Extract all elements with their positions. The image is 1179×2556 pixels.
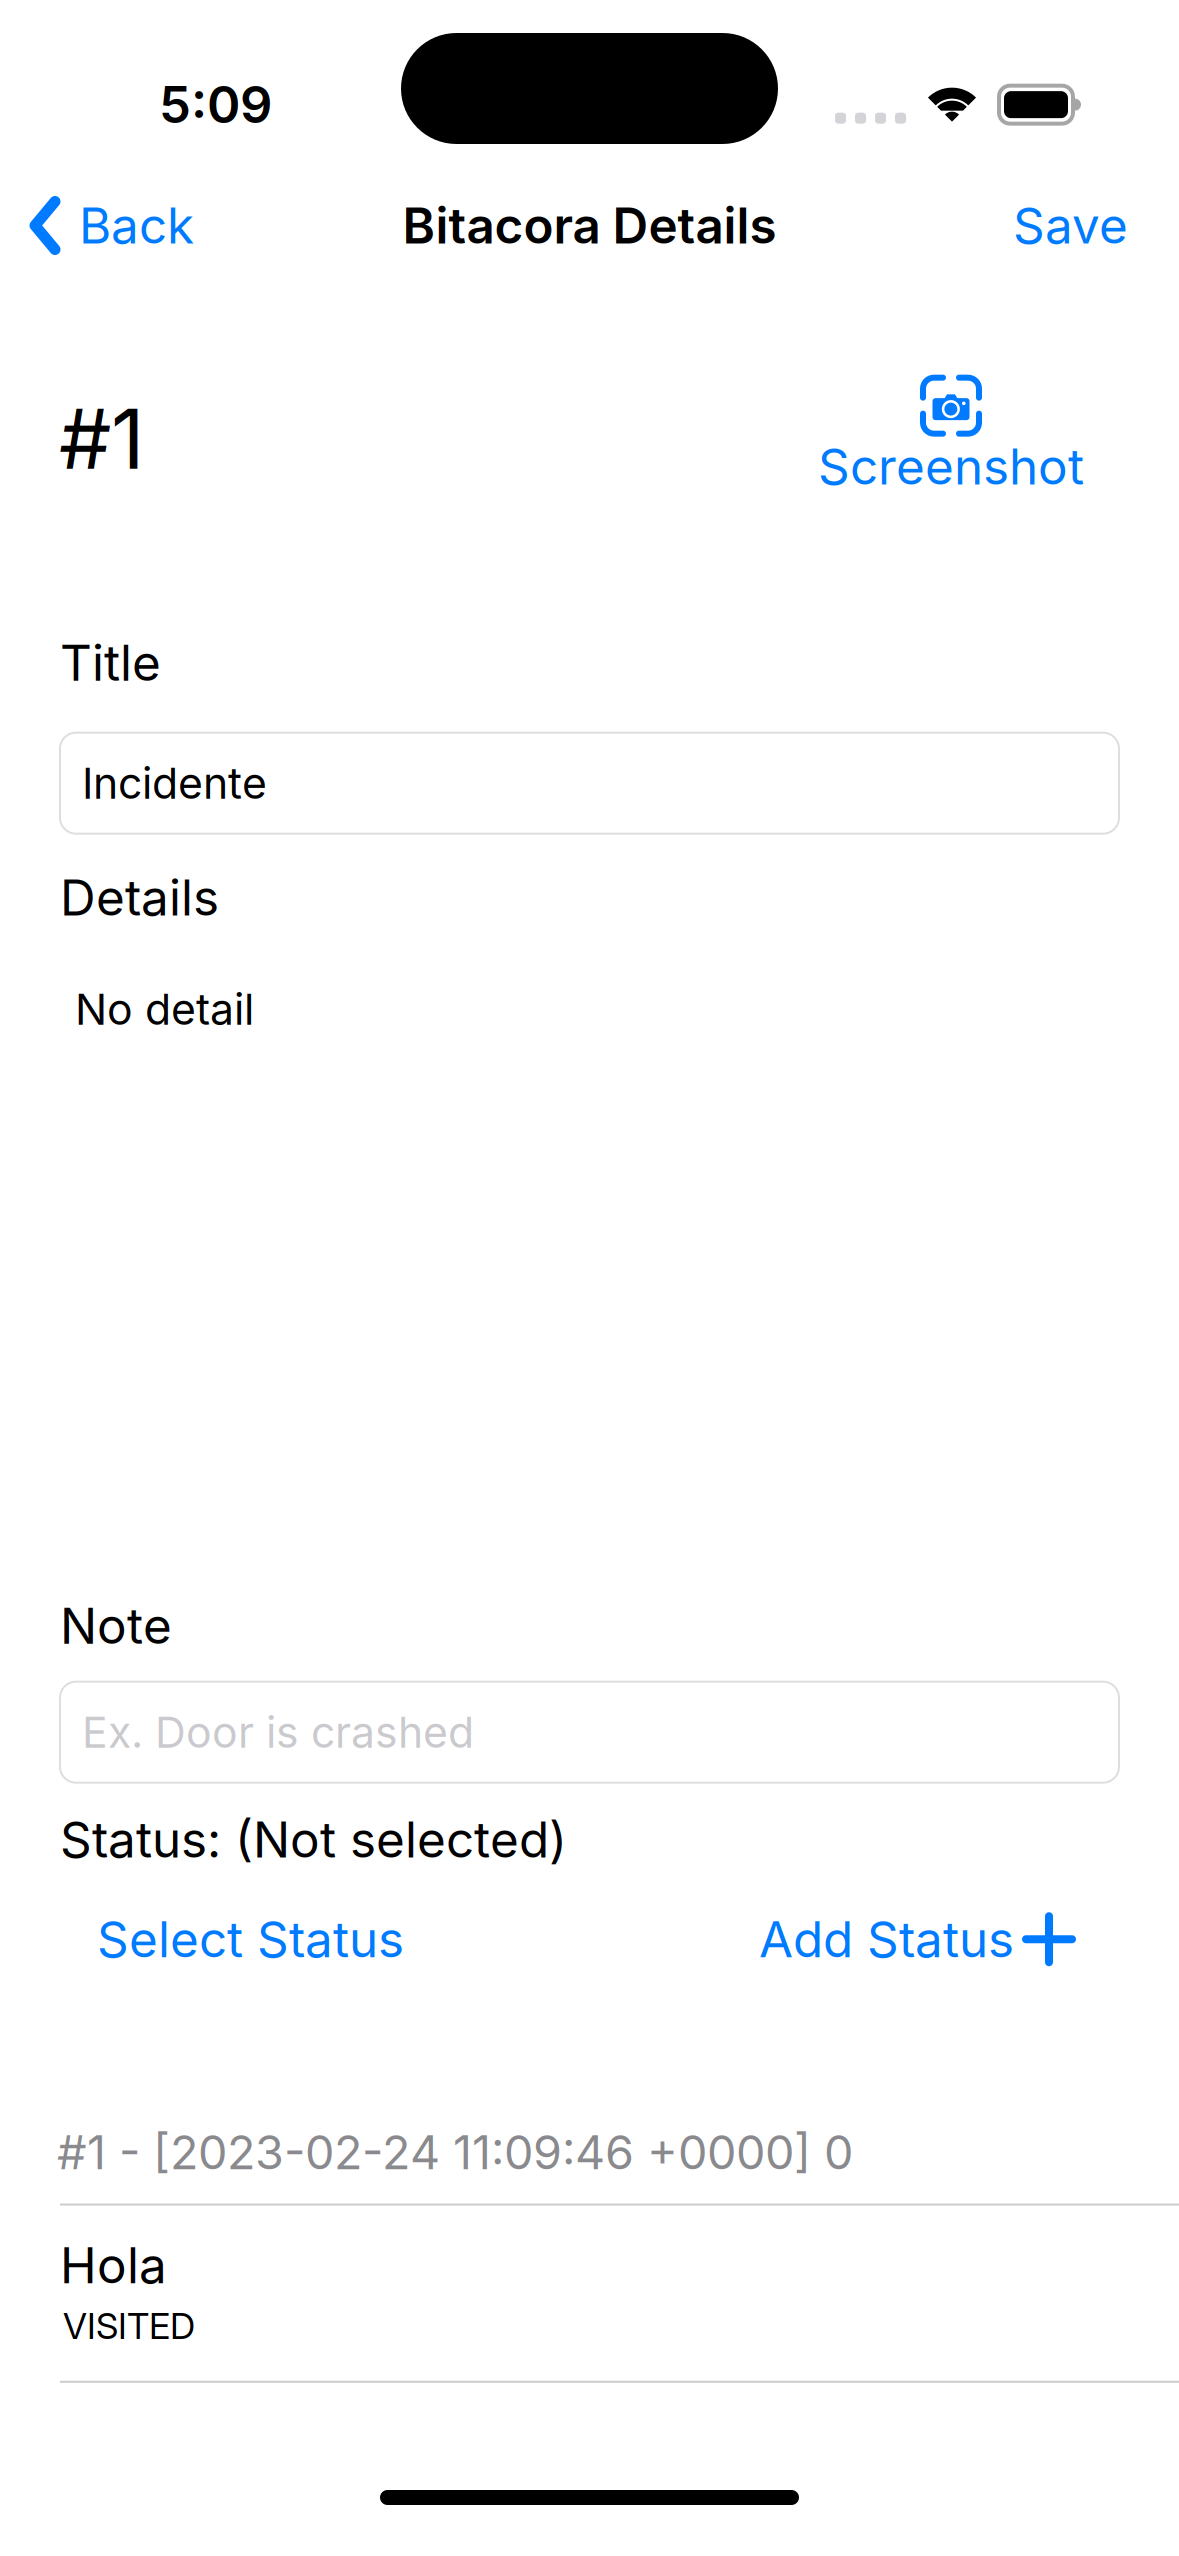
- button[interactable]: Hola: [0, 2205, 1179, 2381]
- button[interactable]: Screenshot: [818, 375, 1084, 496]
- staticText: Ex. Door is crashed: [82, 1706, 474, 1758]
- staticText: Details: [60, 868, 219, 927]
- staticText: Screenshot: [818, 437, 1084, 496]
- staticText: Incidente: [82, 757, 267, 809]
- button[interactable]: Save: [1013, 180, 1179, 271]
- button[interactable]: Select Status: [97, 1893, 404, 1985]
- staticText: No detail: [75, 983, 254, 1035]
- staticText: VISITED: [63, 2304, 195, 2348]
- staticText: Note: [60, 1596, 172, 1656]
- staticText: Back: [79, 196, 194, 255]
- staticText: Hola: [60, 2235, 167, 2295]
- staticText: #1: [59, 389, 145, 489]
- staticText: Select Status: [97, 1909, 404, 1969]
- button[interactable]: Back: [0, 180, 194, 271]
- button[interactable]: Add Status: [759, 1893, 1074, 1985]
- staticText: Status: (Not selected): [60, 1810, 567, 1869]
- staticText: Save: [1013, 196, 1128, 255]
- staticText: #1 - [2023-02-24 11:09:46 +0000] 0: [57, 2124, 853, 2181]
- staticText: Add Status: [759, 1909, 1014, 1969]
- staticText: Bitacora Details: [402, 196, 776, 255]
- staticText: Title: [60, 633, 161, 693]
- staticText: 5:09: [159, 74, 272, 135]
